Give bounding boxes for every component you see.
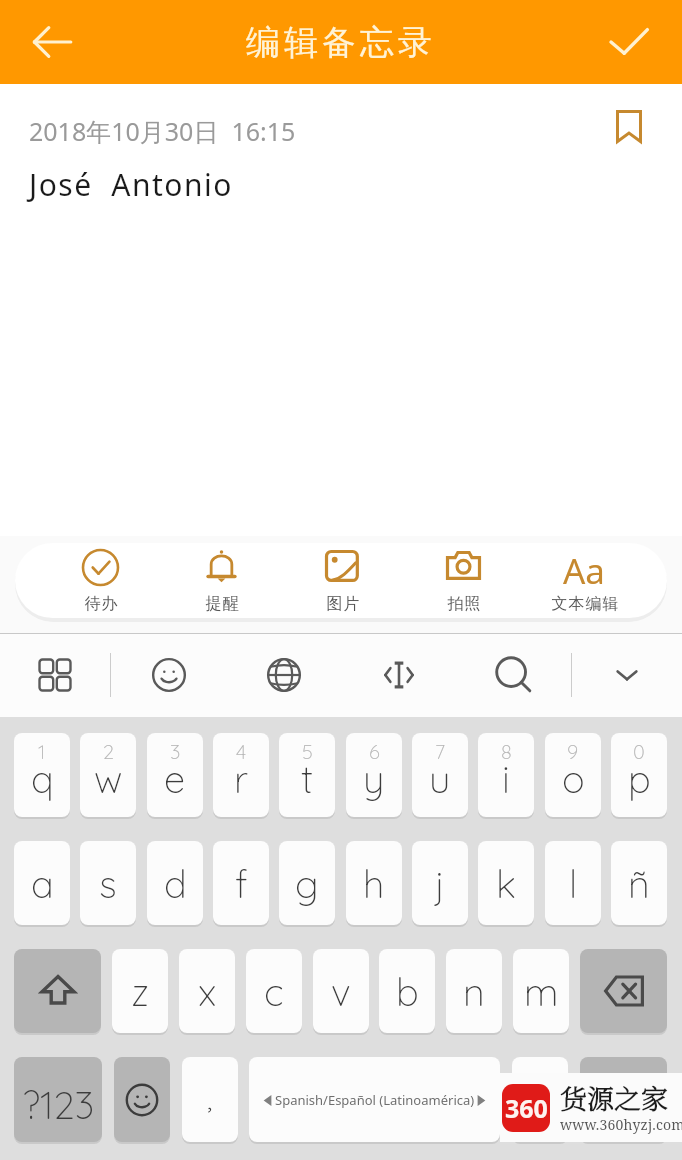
button[interactable]: c [246, 949, 302, 1033]
staticText: c [264, 968, 284, 1016]
staticText: z [131, 968, 150, 1016]
button[interactable]: Done [596, 9, 662, 75]
button[interactable]: a [14, 841, 70, 925]
staticText: ?123 [22, 1081, 95, 1129]
button[interactable]: d [147, 841, 203, 925]
button[interactable]: n [446, 949, 502, 1033]
button[interactable]: z [112, 949, 168, 1033]
staticText: 提醒 [205, 594, 239, 614]
button[interactable]: 7 [412, 733, 468, 817]
button[interactable]: k [478, 841, 534, 925]
button[interactable]: 3 [147, 733, 203, 817]
staticText: 4 [236, 739, 247, 764]
button[interactable]: 1 [14, 733, 70, 817]
button[interactable]: , [182, 1057, 238, 1142]
staticText: p [628, 755, 651, 803]
button[interactable]: b [379, 949, 435, 1033]
staticText: k [496, 860, 516, 908]
staticText: 图片 [326, 594, 360, 614]
staticText: b [396, 968, 419, 1016]
staticText: , [207, 1079, 213, 1117]
staticText: 3 [170, 739, 181, 764]
button[interactable]: Search [456, 633, 571, 717]
button[interactable]: Emoji [111, 633, 226, 717]
staticText: José Antonio [29, 164, 233, 205]
button[interactable]: j [412, 841, 468, 925]
button[interactable]: ?123 [14, 1057, 102, 1142]
button[interactable]: m [513, 949, 569, 1033]
staticText: i [502, 755, 510, 803]
staticText: r [234, 755, 248, 803]
staticText: h [363, 860, 385, 908]
button[interactable]: 提醒 [161, 543, 282, 618]
button[interactable]: Cursor [341, 633, 456, 717]
button[interactable]: 待办 [40, 543, 161, 618]
staticText: f [235, 860, 248, 908]
staticText: 9 [567, 739, 579, 764]
button[interactable]: x [179, 949, 235, 1033]
staticText: q [31, 755, 54, 803]
button[interactable]: v [313, 949, 369, 1033]
button[interactable]: ñ [611, 841, 667, 925]
staticText: t [301, 755, 314, 803]
staticText: g [295, 860, 319, 908]
staticText: j [435, 860, 446, 908]
staticText: 拍照 [447, 594, 481, 614]
staticText: u [429, 755, 451, 803]
button[interactable]: h [346, 841, 402, 925]
staticText: 货源之家 [560, 1078, 668, 1117]
staticText: 6 [369, 739, 380, 764]
staticText: l [569, 860, 578, 908]
staticText: . [538, 1079, 543, 1117]
staticText: d [164, 860, 187, 908]
button[interactable]: . [512, 1057, 568, 1142]
staticText: 1 [38, 739, 46, 764]
button[interactable]: 6 [346, 733, 402, 817]
button[interactable]: 8 [478, 733, 534, 817]
staticText: w [94, 755, 123, 803]
button[interactable]: 9 [545, 733, 601, 817]
staticText: Aa [563, 547, 606, 587]
button[interactable]: 0 [611, 733, 667, 817]
button[interactable]: 5 [279, 733, 335, 817]
button[interactable]: Spanish/Español (Latinoamérica) [249, 1057, 500, 1142]
staticText: 7 [435, 739, 446, 764]
staticText: e [164, 755, 186, 803]
button[interactable]: Aa [524, 543, 645, 618]
button[interactable]: Keyboard layouts [0, 633, 110, 717]
staticText: v [331, 968, 351, 1016]
button[interactable]: Hide keyboard [572, 633, 682, 717]
button[interactable]: f [213, 841, 269, 925]
staticText: 5 [302, 739, 313, 764]
staticText: x [198, 968, 217, 1016]
staticText: 360 [505, 1091, 548, 1125]
button[interactable]: 2 [80, 733, 136, 817]
staticText: y [363, 755, 385, 803]
button[interactable]: Enter [580, 1057, 667, 1142]
staticText: a [31, 860, 54, 908]
staticText: o [562, 755, 585, 803]
button[interactable]: 4 [213, 733, 269, 817]
staticText: 0 [633, 739, 645, 764]
button[interactable]: Backspace [580, 949, 667, 1033]
button[interactable]: Shift [14, 949, 101, 1033]
button[interactable]: Language [226, 633, 341, 717]
staticText: 编辑备忘录 [244, 21, 434, 64]
staticText: 待办 [84, 594, 118, 614]
button[interactable]: g [279, 841, 335, 925]
staticText: s [99, 860, 117, 908]
staticText: ñ [628, 860, 650, 908]
button[interactable]: Emoji [114, 1057, 170, 1142]
staticText: 2018年10月30日 16:15 [29, 114, 296, 148]
button[interactable]: l [545, 841, 601, 925]
staticText: m [524, 968, 559, 1016]
button[interactable]: 图片 [282, 543, 403, 618]
button[interactable]: 拍照 [403, 543, 524, 618]
staticText: n [463, 968, 485, 1016]
button[interactable]: Back [16, 6, 88, 78]
staticText: www.360hyzj.com [560, 1115, 682, 1134]
staticText: 文本编辑 [551, 594, 619, 614]
button[interactable]: Bookmark [604, 101, 654, 151]
button[interactable]: s [80, 841, 136, 925]
staticText: Spanish/Español (Latinoamérica) [275, 1091, 475, 1109]
